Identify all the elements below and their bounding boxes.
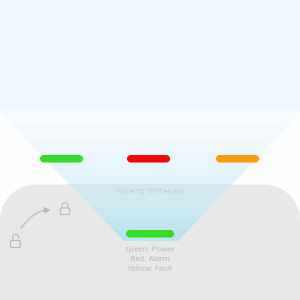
staticText: Green: Power	[125, 243, 174, 254]
staticText: PUSH TO TEST/HUSH	[116, 187, 183, 196]
staticText: Yellow: Fault	[127, 262, 172, 273]
button[interactable]: PUSH TO TEST/HUSH	[0, 188, 300, 195]
staticText: Red: Alarm	[130, 253, 169, 263]
